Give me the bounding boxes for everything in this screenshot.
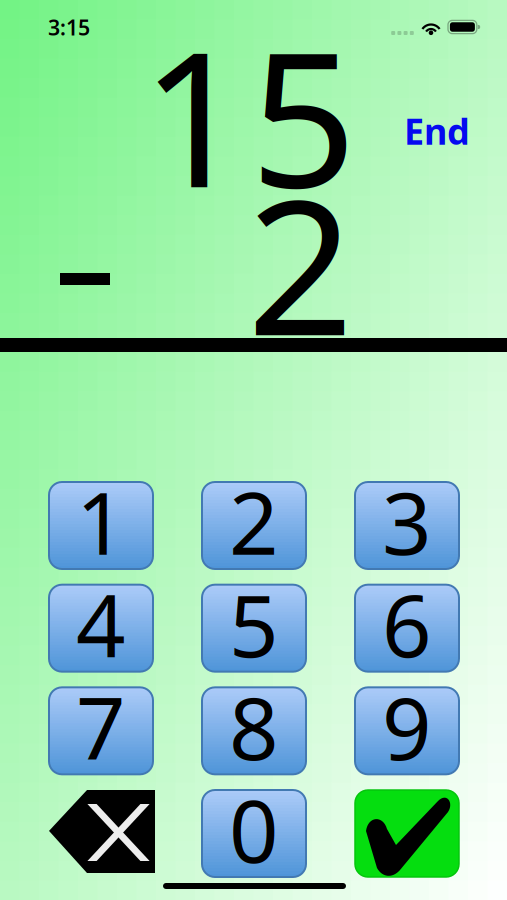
button[interactable]: Delete <box>49 790 153 877</box>
button[interactable]: 1 <box>49 482 153 569</box>
staticText: 9 <box>382 669 432 784</box>
button[interactable]: 0 <box>202 790 306 877</box>
button[interactable]: 8 <box>202 687 306 774</box>
staticText: 2 <box>229 463 279 579</box>
button[interactable]: 7 <box>49 687 153 774</box>
button[interactable]: Enter <box>355 790 459 877</box>
staticText: 1 <box>76 463 126 579</box>
staticText: 3 <box>382 463 432 579</box>
button[interactable]: 6 <box>355 585 459 672</box>
staticText: End <box>404 107 470 155</box>
button[interactable]: 5 <box>202 585 306 672</box>
staticText: 5 <box>250 0 357 239</box>
staticText: 6 <box>382 566 432 681</box>
button[interactable]: 3 <box>355 482 459 569</box>
button[interactable]: 9 <box>355 687 459 774</box>
button[interactable]: End <box>396 101 478 161</box>
staticText: 5 <box>229 566 279 681</box>
button[interactable]: 2 <box>202 482 306 569</box>
staticText: 4 <box>76 566 126 681</box>
staticText: 8 <box>229 669 279 784</box>
button[interactable]: 3:15 <box>48 13 90 41</box>
button[interactable]: 4 <box>49 585 153 672</box>
staticText: 0 <box>229 771 279 887</box>
staticText: 7 <box>76 669 126 784</box>
staticText: 1 <box>141 0 248 239</box>
staticText: 3:15 <box>48 13 90 41</box>
staticText: 2 <box>247 139 354 387</box>
